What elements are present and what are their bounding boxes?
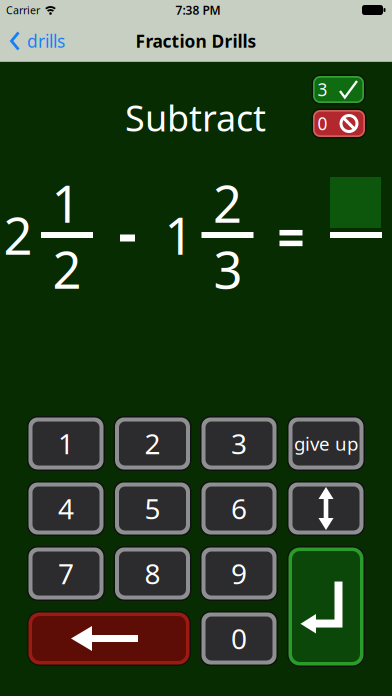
- button[interactable]: Back to drills: [9, 29, 65, 52]
- staticText: 2: [52, 235, 81, 303]
- staticText: Fraction Drills: [135, 29, 256, 52]
- staticText: 0: [231, 620, 247, 657]
- staticText: 8: [144, 555, 160, 592]
- button[interactable]: 6: [200, 481, 278, 536]
- staticText: 7: [58, 555, 74, 592]
- button[interactable]: 5: [113, 481, 191, 536]
- button[interactable]: 8: [113, 546, 191, 601]
- button[interactable]: 0: [200, 611, 278, 666]
- button[interactable]: 9: [200, 546, 278, 601]
- staticText: 3: [231, 425, 247, 462]
- staticText: 2: [144, 425, 160, 462]
- staticText: 6: [231, 490, 247, 527]
- staticText: 1: [58, 425, 74, 462]
- button[interactable]: 2: [113, 416, 191, 471]
- staticText: 2: [3, 201, 32, 269]
- button[interactable]: 7: [27, 546, 105, 601]
- staticText: 5: [144, 490, 160, 527]
- button[interactable]: Toggle numerator or denominator: [287, 481, 365, 536]
- staticText: 1: [164, 201, 193, 269]
- staticText: drills: [27, 29, 65, 52]
- button[interactable]: Backspace: [27, 611, 191, 666]
- staticText: 1: [51, 169, 80, 237]
- staticText: 3: [317, 78, 327, 101]
- staticText: 9: [231, 555, 247, 592]
- button[interactable]: give up: [287, 416, 365, 471]
- button[interactable]: 1: [27, 416, 105, 471]
- staticText: 3: [213, 235, 242, 303]
- button[interactable]: 3: [200, 416, 278, 471]
- staticText: Carrier: [6, 3, 40, 17]
- staticText: Subtract: [125, 94, 266, 141]
- staticText: give up: [294, 431, 358, 456]
- staticText: 7:38 PM: [175, 2, 220, 18]
- button[interactable]: Enter answer: [287, 546, 365, 667]
- button[interactable]: 4: [27, 481, 105, 536]
- staticText: 2: [213, 169, 242, 237]
- staticText: 0: [317, 112, 327, 135]
- staticText: 4: [58, 490, 74, 527]
